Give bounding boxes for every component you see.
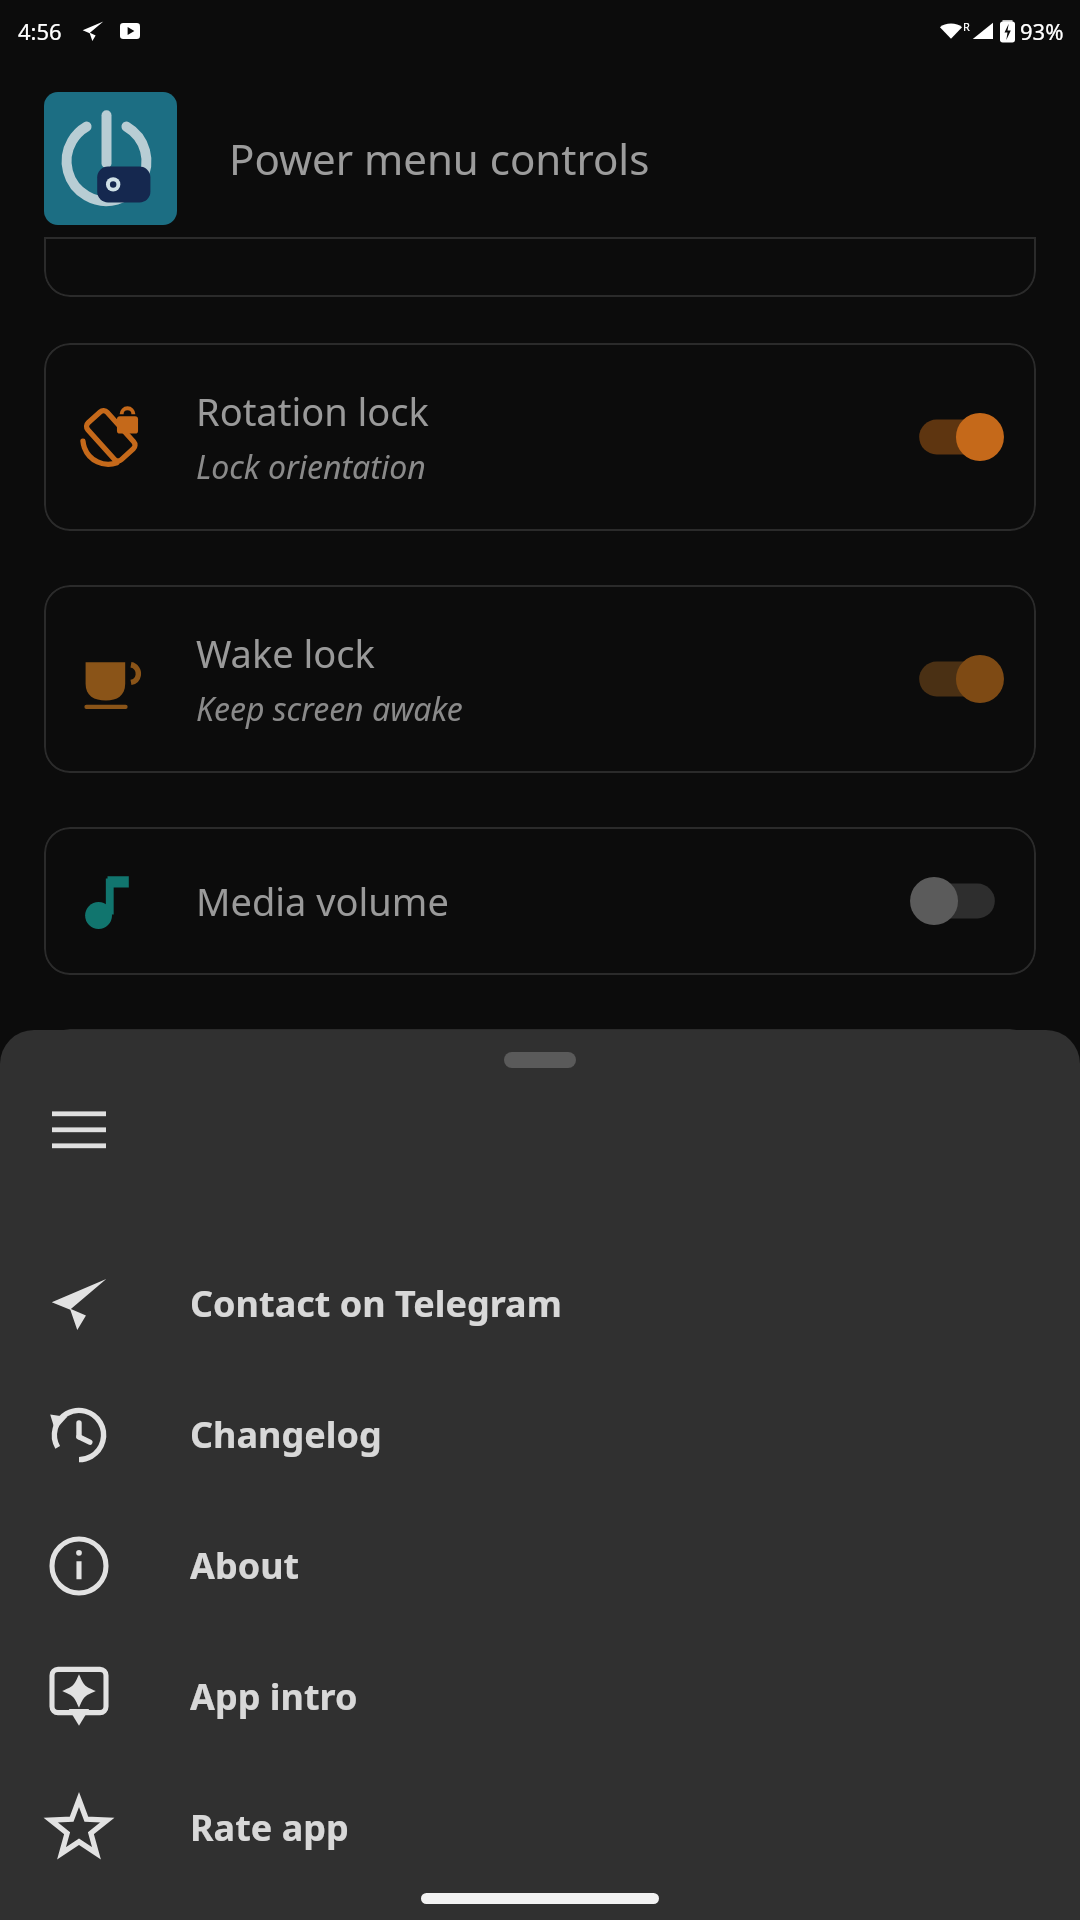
button[interactable] — [44, 237, 1036, 297]
button[interactable]: Media volume — [44, 827, 1036, 975]
staticText: Keep screen awake — [196, 687, 463, 731]
staticText: 93% — [1020, 16, 1064, 46]
staticText: Media volume — [196, 875, 449, 927]
staticText: Power menu controls — [229, 130, 650, 187]
button[interactable]: Changelog — [0, 1369, 1080, 1500]
button[interactable] — [44, 1029, 1036, 1089]
button[interactable]: Toggle on — [914, 649, 1000, 709]
button[interactable]: Toggle on — [914, 407, 1000, 467]
staticText: Contact on Telegram — [190, 1279, 562, 1328]
button[interactable]: About — [0, 1500, 1080, 1631]
button[interactable]: Rate app — [0, 1762, 1080, 1893]
staticText: Rate app — [190, 1803, 349, 1852]
staticText: Changelog — [190, 1410, 382, 1459]
staticText: About — [190, 1541, 300, 1590]
staticText: Wake lock — [196, 627, 375, 679]
button[interactable]: Contact on Telegram — [0, 1238, 1080, 1369]
staticText: Lock orientation — [196, 445, 426, 489]
staticText: Rotation lock — [196, 385, 429, 437]
staticText: 4:56 — [18, 16, 62, 46]
staticText: R — [963, 19, 970, 34]
staticText: App intro — [190, 1672, 358, 1721]
button[interactable]: Toggle off — [914, 871, 1000, 931]
button[interactable]: Menu — [46, 1096, 112, 1162]
button[interactable]: Rotation lock — [44, 343, 1036, 531]
button[interactable]: Wake lock — [44, 585, 1036, 773]
button[interactable]: App intro — [0, 1631, 1080, 1762]
